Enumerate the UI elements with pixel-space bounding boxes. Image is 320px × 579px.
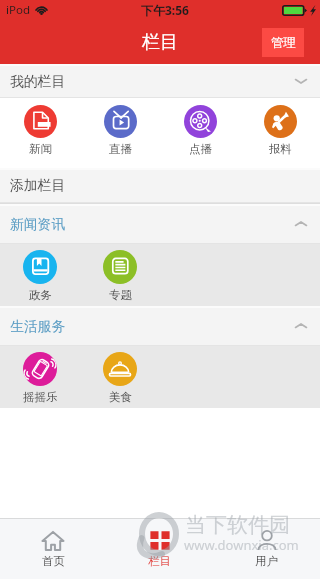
button[interactable]: Profile bbox=[213, 519, 320, 579]
staticText: 栏目 bbox=[142, 31, 178, 54]
staticText: 美食 bbox=[109, 390, 132, 404]
staticText: 首页 bbox=[42, 554, 65, 568]
staticText: 我的栏目 bbox=[10, 73, 66, 90]
staticText: www.downxia.com bbox=[184, 536, 299, 554]
button[interactable]: 点播 bbox=[160, 98, 240, 168]
staticText: 栏目 bbox=[148, 554, 171, 568]
staticText: 下午3:56 bbox=[141, 2, 189, 18]
button[interactable]: 管理 bbox=[262, 28, 304, 57]
staticText: 点播 bbox=[189, 142, 212, 156]
other: Channels bbox=[148, 530, 172, 551]
button[interactable]: Channels bbox=[106, 519, 213, 579]
staticText: 政务 bbox=[29, 288, 52, 302]
button[interactable]: 添加栏目 bbox=[0, 168, 320, 203]
staticText: 当下软件园 bbox=[185, 512, 290, 538]
staticText: iPod bbox=[6, 2, 30, 18]
other: Home bbox=[41, 530, 65, 551]
staticText: 直播 bbox=[109, 142, 132, 156]
button[interactable]: 美食 bbox=[80, 346, 160, 408]
button[interactable]: 新闻资讯 bbox=[0, 204, 320, 244]
button[interactable]: 政务 bbox=[0, 244, 80, 306]
button[interactable]: 生活服务 bbox=[0, 306, 320, 346]
staticText: 专题 bbox=[109, 288, 132, 302]
staticText: 新闻资讯 bbox=[10, 216, 66, 233]
staticText: 用户 bbox=[255, 554, 278, 568]
button[interactable]: 新闻 bbox=[0, 98, 80, 168]
staticText: 新闻 bbox=[29, 142, 52, 156]
button[interactable]: Home bbox=[0, 519, 106, 579]
staticText: 报料 bbox=[269, 142, 292, 156]
staticText: 生活服务 bbox=[10, 318, 66, 335]
button[interactable]: 专题 bbox=[80, 244, 160, 306]
button[interactable]: 报料 bbox=[240, 98, 320, 168]
other: Profile bbox=[255, 530, 279, 551]
button[interactable]: 直播 bbox=[80, 98, 160, 168]
staticText: 管理 bbox=[271, 35, 296, 51]
staticText: 摇摇乐 bbox=[23, 390, 58, 404]
button[interactable]: 摇摇乐 bbox=[0, 346, 80, 408]
staticText: 添加栏目 bbox=[10, 177, 66, 194]
button[interactable]: 我的栏目 bbox=[0, 64, 320, 98]
